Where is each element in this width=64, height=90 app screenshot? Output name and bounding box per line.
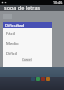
- staticText: Dificultad: [5, 22, 25, 28]
- staticText: Fácil: [6, 30, 15, 36]
- staticText: sopa de letras: [4, 4, 41, 10]
- button[interactable]: Medio: [3, 38, 52, 48]
- staticText: Medio: [6, 40, 19, 46]
- button[interactable]: Files: [46, 77, 50, 81]
- button[interactable]: Music: [41, 77, 45, 81]
- button[interactable]: Cancelar: [22, 58, 32, 62]
- button[interactable]: Messages: [31, 77, 35, 81]
- button[interactable]: Share: [36, 77, 40, 81]
- button[interactable]: Fácil: [3, 28, 52, 38]
- staticText: 10:46: [53, 0, 63, 5]
- staticText: Difícil: [6, 50, 18, 56]
- button[interactable]: Difícil: [3, 48, 52, 58]
- staticText: Cancelar: [22, 58, 32, 62]
